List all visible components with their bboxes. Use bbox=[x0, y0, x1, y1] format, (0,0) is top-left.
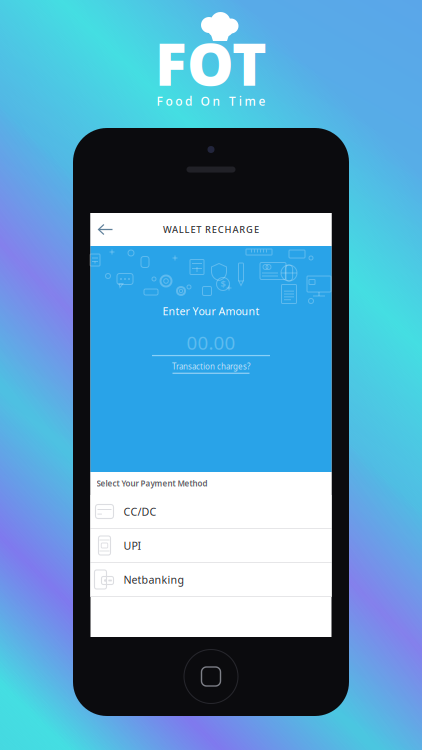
staticText: FOT bbox=[155, 24, 267, 102]
staticText: Transaction charges? bbox=[172, 361, 250, 372]
staticText: 00.00 bbox=[186, 330, 235, 355]
staticText: $ bbox=[220, 278, 225, 290]
staticText: Enter Your Amount bbox=[162, 304, 259, 318]
button[interactable]: UPI bbox=[90, 529, 331, 562]
button[interactable]: CC/DC bbox=[90, 495, 331, 528]
staticText: Netbanking bbox=[123, 572, 184, 587]
button[interactable]: Back bbox=[90, 213, 120, 246]
staticText: UPI bbox=[123, 538, 141, 553]
button[interactable]: Transaction charges? bbox=[172, 361, 250, 374]
staticText: CC/DC bbox=[123, 504, 156, 519]
staticText: WALLET RECHARGE bbox=[163, 223, 259, 236]
staticText: Food On Time bbox=[157, 93, 265, 109]
staticText: Select Your Payment Method bbox=[96, 478, 207, 489]
button[interactable]: Netbanking bbox=[90, 563, 331, 596]
